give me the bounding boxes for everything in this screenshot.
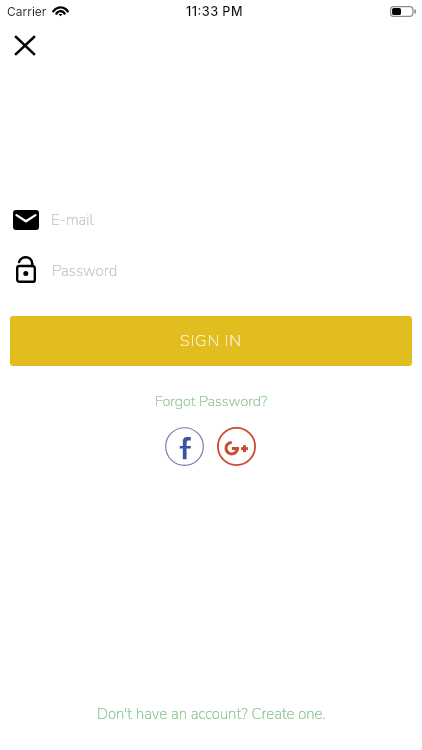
- staticText: Carrier: [7, 4, 47, 19]
- button[interactable]: SIGN IN: [10, 316, 412, 366]
- staticText: Password: [52, 261, 118, 282]
- staticText: Don't have an account? Create one.: [97, 704, 326, 724]
- staticText: Forgot Password?: [155, 391, 268, 411]
- button[interactable]: Sign in with Google Plus: [217, 427, 256, 466]
- button[interactable]: Don't have an account? Create one.: [89, 700, 334, 728]
- button[interactable]: E-mail: [0, 200, 422, 240]
- button[interactable]: Password: [0, 251, 422, 291]
- button[interactable]: Sign in with Facebook: [165, 427, 204, 466]
- staticText: 11:33 PM: [186, 4, 243, 19]
- staticText: E-mail: [51, 210, 94, 231]
- button[interactable]: Close: [3, 26, 48, 67]
- button[interactable]: Forgot Password?: [147, 387, 276, 415]
- staticText: SIGN IN: [180, 330, 242, 352]
